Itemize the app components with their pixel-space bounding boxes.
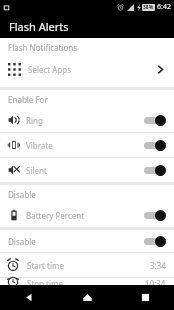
staticText: Silent bbox=[26, 165, 47, 176]
staticText: Battery Percent bbox=[26, 210, 85, 221]
button[interactable]: Toggle bbox=[144, 235, 166, 247]
button[interactable]: Toggle bbox=[144, 209, 166, 221]
staticText: Disable bbox=[8, 189, 36, 200]
staticText: Select Apps bbox=[28, 64, 72, 75]
button[interactable]: Ring bbox=[0, 108, 174, 132]
staticText: 3:34 bbox=[150, 260, 166, 271]
button[interactable]: Disable bbox=[0, 230, 174, 252]
button[interactable]: Battery Percent bbox=[0, 203, 174, 227]
staticText: Flash Notifications bbox=[8, 42, 78, 53]
staticText: 10:34 bbox=[145, 278, 166, 285]
button[interactable]: Select Apps bbox=[0, 56, 174, 82]
staticText: Stop time bbox=[27, 278, 64, 285]
button[interactable]: Start time bbox=[0, 253, 174, 277]
staticText: Start time bbox=[27, 260, 64, 271]
button[interactable]: Home bbox=[58, 285, 116, 310]
staticText: Disable bbox=[8, 236, 36, 247]
staticText: 6:42 bbox=[157, 2, 171, 12]
button[interactable]: Back bbox=[0, 285, 58, 310]
staticText: Ring bbox=[26, 115, 43, 126]
staticText: Vibrate bbox=[26, 140, 53, 151]
button[interactable]: Vibrate bbox=[0, 133, 174, 157]
button[interactable]: Toggle bbox=[144, 164, 166, 176]
button[interactable]: Silent bbox=[0, 158, 174, 182]
staticText: Enable For bbox=[8, 94, 48, 105]
button[interactable]: Recent apps bbox=[116, 285, 174, 310]
staticText: Flash Alerts bbox=[9, 19, 69, 34]
staticText: 38% bbox=[143, 4, 154, 11]
button[interactable]: Toggle bbox=[144, 114, 166, 126]
button[interactable]: Stop time bbox=[0, 278, 174, 285]
button[interactable]: Toggle bbox=[144, 139, 166, 151]
